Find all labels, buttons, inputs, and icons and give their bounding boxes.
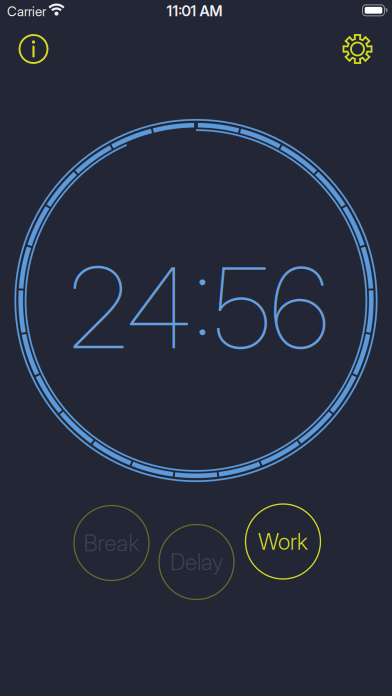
staticText: 11:01 AM [166, 2, 222, 20]
button[interactable]: Break [73, 505, 149, 581]
staticText: Work [258, 528, 308, 555]
button[interactable]: Info [16, 32, 50, 66]
staticText: Delay [170, 548, 223, 576]
staticText: Carrier [7, 3, 46, 19]
staticText: Break [83, 529, 139, 557]
button[interactable]: Work [245, 503, 321, 579]
staticText: 24:56 [68, 240, 328, 375]
button[interactable]: Delay [158, 524, 234, 600]
button[interactable]: Settings [339, 31, 375, 67]
